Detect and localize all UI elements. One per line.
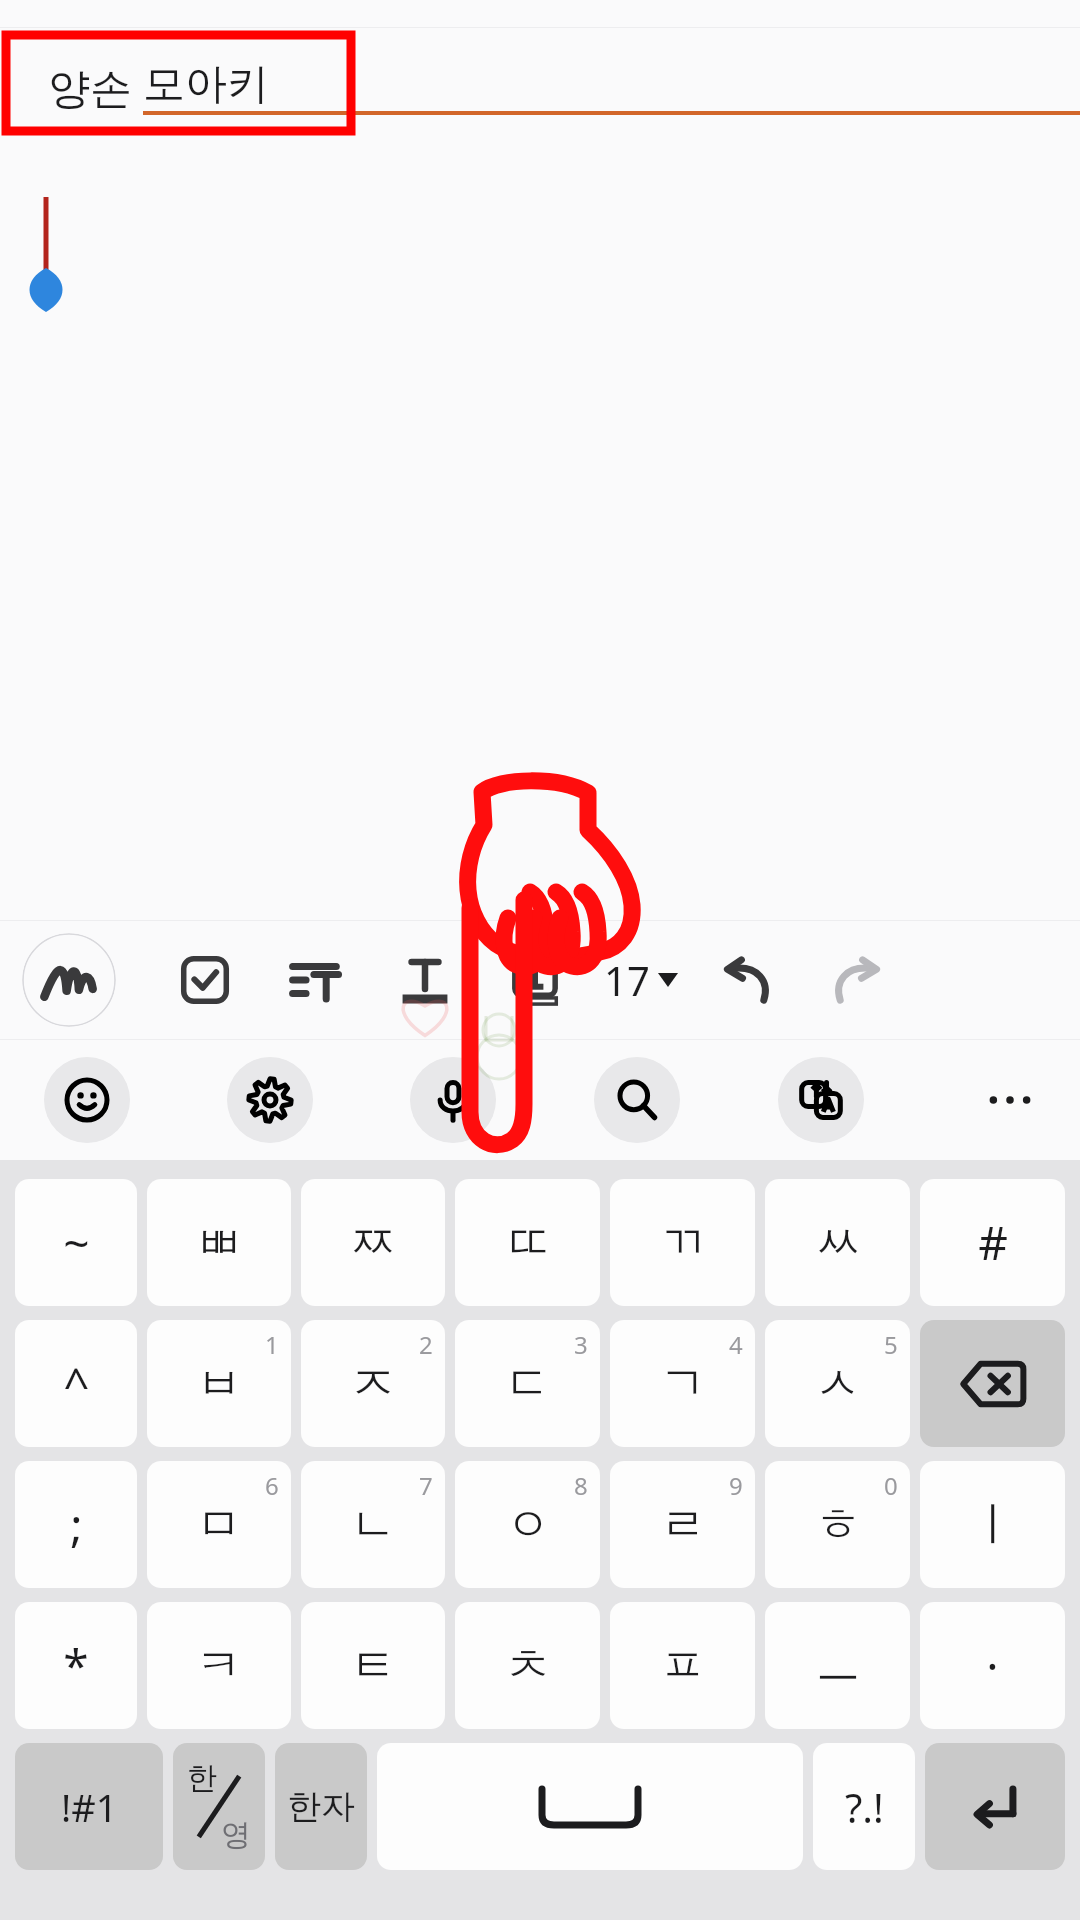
button[interactable]: Checklist — [150, 928, 260, 1032]
staticText: ㅇ — [505, 1496, 551, 1554]
staticText: ㅍ — [660, 1637, 706, 1695]
button[interactable]: Handwriting — [22, 933, 116, 1027]
staticText: 양손 — [48, 58, 143, 115]
button[interactable]: ㅈ — [301, 1320, 445, 1447]
button[interactable]: ㄹ — [610, 1461, 755, 1588]
button[interactable]: More options — [962, 1052, 1058, 1148]
staticText: # — [978, 1211, 1008, 1274]
button[interactable]: ㅂ — [147, 1320, 291, 1447]
staticText: ㄷ — [505, 1355, 551, 1413]
button[interactable]: Insert image — [480, 928, 590, 1032]
button[interactable]: ㅡ — [765, 1602, 910, 1729]
staticText: ㄸ — [505, 1214, 551, 1272]
button[interactable]: Backspace — [920, 1320, 1065, 1447]
staticText: 9 — [729, 1469, 743, 1502]
staticText: * — [63, 1634, 89, 1697]
staticText: ㅋ — [196, 1637, 242, 1695]
staticText: ㄲ — [660, 1214, 706, 1272]
button[interactable]: Paragraph style — [260, 928, 370, 1032]
staticText: ㅃ — [196, 1214, 242, 1272]
staticText: ?.! — [845, 1780, 884, 1834]
staticText: 7 — [419, 1469, 433, 1502]
button[interactable]: ㅎ — [765, 1461, 910, 1588]
staticText: ㅉ — [350, 1214, 396, 1272]
button[interactable]: ㅊ — [455, 1602, 600, 1729]
button[interactable]: Voice input — [410, 1057, 496, 1143]
staticText: ㄹ — [660, 1496, 706, 1554]
button[interactable]: ~ — [15, 1179, 137, 1306]
staticText: 8 — [574, 1469, 588, 1502]
button[interactable]: ㄴ — [301, 1461, 445, 1588]
staticText: ; — [70, 1493, 83, 1556]
button[interactable]: ^ — [15, 1320, 137, 1447]
button[interactable]: Translate — [778, 1057, 864, 1143]
staticText: ㅡ — [815, 1637, 861, 1695]
staticText: ㄴ — [350, 1496, 396, 1554]
button[interactable]: ㅌ — [301, 1602, 445, 1729]
button[interactable]: Enter — [925, 1743, 1065, 1870]
button[interactable]: Undo — [692, 928, 802, 1032]
button[interactable]: ㅃ — [147, 1179, 291, 1306]
staticText: !#1 — [61, 1781, 118, 1833]
staticText: 6 — [265, 1469, 279, 1502]
button[interactable]: ㅇ — [455, 1461, 600, 1588]
staticText: ㅈ — [350, 1355, 396, 1413]
button[interactable]: Redo — [802, 928, 912, 1032]
staticText: ~ — [63, 1211, 90, 1274]
staticText: 모아키 — [143, 58, 269, 111]
button[interactable]: # — [920, 1179, 1065, 1306]
staticText: 1 — [265, 1328, 279, 1361]
button[interactable]: Text format — [370, 928, 480, 1032]
staticText: ㅎ — [815, 1496, 861, 1554]
button[interactable]: ㄱ — [610, 1320, 755, 1447]
button[interactable]: * — [15, 1602, 137, 1729]
button[interactable]: ㅋ — [147, 1602, 291, 1729]
button[interactable]: Space — [377, 1743, 803, 1870]
staticText: 0 — [884, 1469, 898, 1502]
staticText: ㅂ — [196, 1355, 242, 1413]
staticText: 영 — [221, 1816, 251, 1854]
staticText: ㅆ — [815, 1214, 861, 1272]
button[interactable]: 한자 — [275, 1743, 367, 1870]
staticText: ㅊ — [505, 1637, 551, 1695]
button[interactable]: Korean English toggle — [173, 1743, 265, 1870]
button[interactable]: ㅆ — [765, 1179, 910, 1306]
staticText: 17 — [604, 953, 650, 1007]
button[interactable]: ㅍ — [610, 1602, 755, 1729]
button[interactable]: ㅉ — [301, 1179, 445, 1306]
button[interactable]: ?.! — [813, 1743, 915, 1870]
button[interactable]: 17 — [604, 928, 678, 1032]
staticText: ^ — [63, 1352, 90, 1415]
staticText: 한 — [187, 1759, 217, 1797]
button[interactable]: ㄲ — [610, 1179, 755, 1306]
staticText: 한자 — [287, 1785, 355, 1828]
staticText: ㄱ — [660, 1355, 706, 1413]
button[interactable]: · — [920, 1602, 1065, 1729]
staticText: · — [986, 1634, 999, 1697]
staticText: ㅁ — [196, 1496, 242, 1554]
staticText: 3 — [574, 1328, 588, 1361]
staticText: 4 — [729, 1328, 743, 1361]
staticText: 2 — [419, 1328, 433, 1361]
button[interactable]: Emoji — [44, 1057, 130, 1143]
staticText: ㅌ — [350, 1637, 396, 1695]
button[interactable]: Search — [594, 1057, 680, 1143]
button[interactable]: Settings — [227, 1057, 313, 1143]
button[interactable]: ㅣ — [920, 1461, 1065, 1588]
staticText: ㅣ — [970, 1496, 1016, 1554]
button[interactable]: ㅅ — [765, 1320, 910, 1447]
button[interactable]: ㄸ — [455, 1179, 600, 1306]
button[interactable]: !#1 — [15, 1743, 163, 1870]
staticText: 5 — [884, 1328, 898, 1361]
button[interactable]: ㄷ — [455, 1320, 600, 1447]
button[interactable]: ; — [15, 1461, 137, 1588]
button[interactable]: ㅁ — [147, 1461, 291, 1588]
staticText: ㅅ — [815, 1355, 861, 1413]
